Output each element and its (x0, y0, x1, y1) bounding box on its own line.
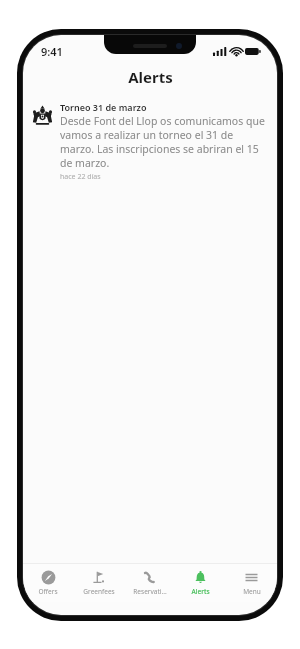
button[interactable]: Menu (226, 564, 277, 602)
staticText: Alerts (191, 587, 210, 596)
staticText: Menu (243, 587, 261, 596)
staticText: Reservati... (133, 587, 167, 596)
staticText: Offers (38, 587, 58, 596)
staticText: 9:41 (41, 44, 63, 59)
staticText: Greenfees (83, 587, 115, 596)
staticText: Torneo 31 de marzo (60, 101, 147, 113)
button[interactable]: Alerts (175, 564, 226, 602)
staticText: Alerts (128, 67, 173, 87)
staticText: hace 22 días (60, 172, 101, 182)
staticText: Desde Font del Llop os comunicamos que v… (60, 114, 267, 170)
button[interactable]: Reservati... (124, 564, 175, 602)
button[interactable]: Torneo 31 de marzo (23, 92, 277, 192)
button[interactable]: Offers (23, 564, 73, 602)
button[interactable]: Greenfees (73, 564, 124, 602)
